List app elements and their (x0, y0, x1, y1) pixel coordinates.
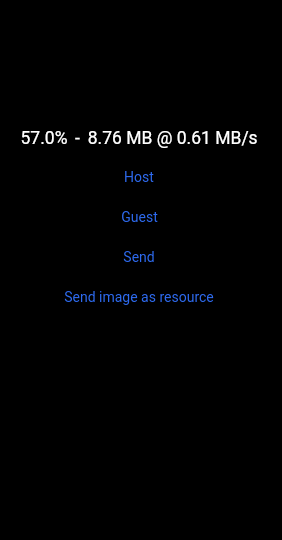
staticText: 8.76 MB @ 0.61 MB/s (83, 128, 258, 149)
staticText: 57.0% (18, 128, 70, 149)
staticText: Send (123, 249, 155, 265)
button[interactable]: Host (0, 157, 280, 197)
staticText: Host (124, 169, 154, 185)
button[interactable]: Send image as resource (0, 277, 280, 317)
staticText: - (75, 128, 80, 149)
staticText: Send image as resource (64, 289, 214, 305)
staticText: Guest (121, 209, 158, 225)
button[interactable]: Send (0, 237, 280, 277)
button[interactable]: Guest (0, 197, 280, 237)
